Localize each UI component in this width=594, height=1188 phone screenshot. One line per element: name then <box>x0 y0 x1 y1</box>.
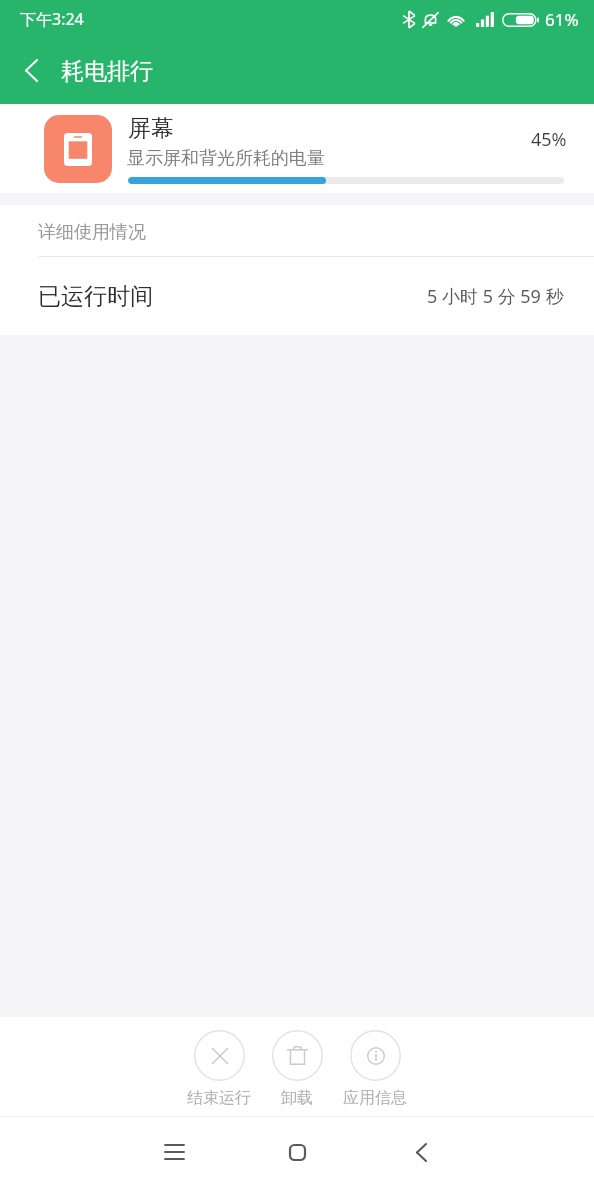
staticText: 61% <box>545 8 579 31</box>
button[interactable]: Recent apps <box>144 1122 204 1182</box>
staticText: 详细使用情况 <box>38 221 146 244</box>
staticText: 卸载 <box>281 1088 313 1108</box>
staticText: 屏幕 <box>128 114 174 143</box>
staticText: 5 小时 5 分 59 秒 <box>427 284 564 309</box>
staticText: 应用信息 <box>343 1088 407 1108</box>
button[interactable]: Home <box>267 1122 327 1182</box>
button[interactable]: 应用信息 <box>337 1030 413 1108</box>
button[interactable]: 已运行时间 <box>0 257 594 335</box>
staticText: 45% <box>531 127 567 152</box>
button[interactable]: 卸载 <box>259 1030 335 1108</box>
staticText: 结束运行 <box>187 1088 251 1108</box>
button[interactable]: Back <box>7 46 55 94</box>
button[interactable]: 屏幕 <box>0 104 594 193</box>
button[interactable]: 结束运行 <box>181 1030 257 1108</box>
button[interactable]: Back <box>391 1122 451 1182</box>
staticText: 显示屏和背光所耗的电量 <box>127 147 325 170</box>
staticText: 已运行时间 <box>38 282 153 311</box>
staticText: 耗电排行 <box>61 57 153 86</box>
staticText: 下午3:24 <box>20 8 84 30</box>
